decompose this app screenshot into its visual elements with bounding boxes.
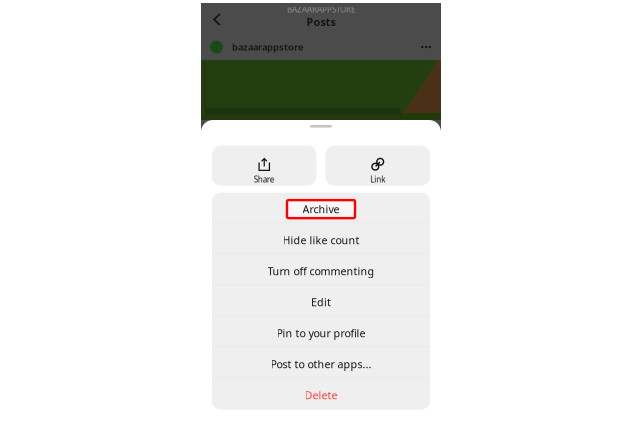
button[interactable]: Post to other apps...: [212, 348, 430, 379]
staticText: BAZAARAPPSTORE: [287, 4, 355, 15]
button[interactable]: Edit: [212, 286, 430, 317]
staticText: Link: [370, 174, 385, 185]
staticText: Hide like count: [282, 233, 359, 247]
staticText: Archive: [302, 202, 339, 216]
staticText: Pin to your profile: [276, 326, 365, 340]
staticText: Post to other apps...: [270, 357, 371, 371]
button[interactable]: Archive: [212, 193, 430, 224]
staticText: Share: [254, 174, 275, 185]
staticText: Delete: [304, 388, 337, 402]
staticText: bazaarappstore: [232, 41, 303, 53]
staticText: Turn off commenting: [267, 264, 374, 278]
button[interactable]: Turn off commenting: [212, 255, 430, 286]
button[interactable]: Pin to your profile: [212, 317, 430, 348]
staticText: Edit: [311, 295, 331, 309]
button[interactable]: More options: [414, 36, 438, 58]
button[interactable]: Delete: [212, 379, 430, 410]
button[interactable]: Share: [212, 146, 316, 186]
staticText: Posts: [306, 15, 335, 29]
button[interactable]: Link: [325, 146, 430, 186]
button[interactable]: Hide like count: [212, 224, 430, 255]
button[interactable]: Back: [204, 6, 230, 32]
